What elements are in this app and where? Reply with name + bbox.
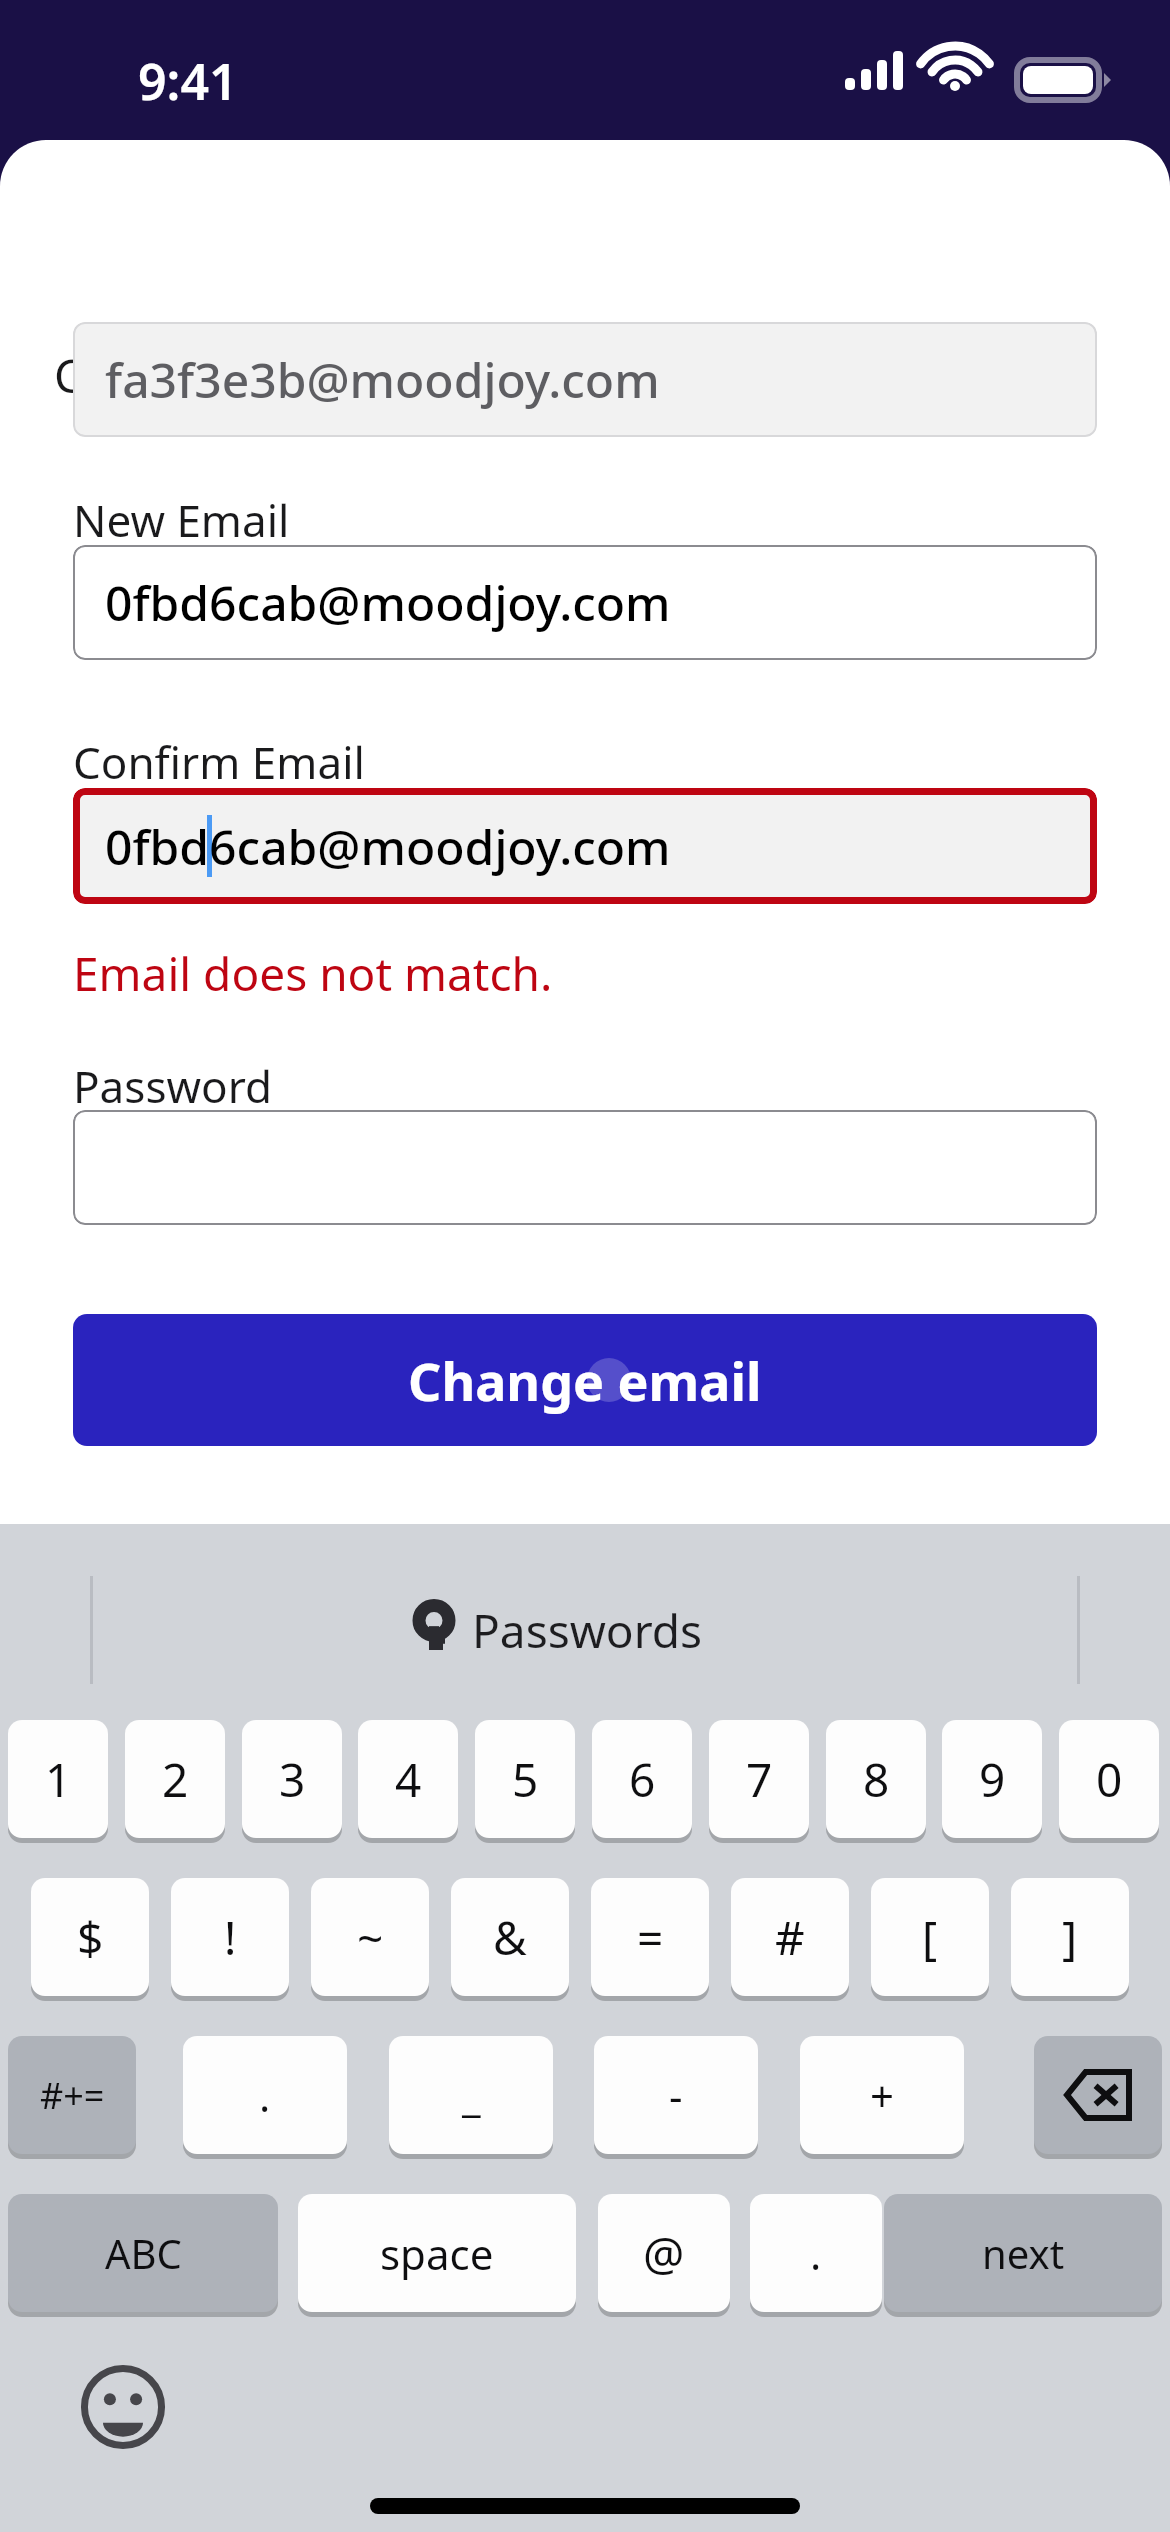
staticText: fa3f3e3b@moodjoy.com <box>105 347 660 412</box>
staticText: ! <box>224 1906 237 1969</box>
button[interactable]: 6 <box>592 1720 692 1838</box>
button[interactable]: . <box>750 2194 882 2312</box>
staticText: Cancel <box>54 344 198 407</box>
staticText: 3 <box>279 1748 306 1811</box>
button[interactable]: $ <box>31 1878 149 1996</box>
button[interactable]: ABC <box>8 2194 278 2312</box>
button[interactable]: space <box>298 2194 576 2312</box>
staticText: Confirm Email <box>73 732 365 792</box>
staticText: 1 <box>45 1748 72 1811</box>
staticText: 9:41 <box>138 47 238 115</box>
button[interactable]: _ <box>389 2036 553 2154</box>
button[interactable]: = <box>591 1878 709 1996</box>
button[interactable]: Backspace <box>1034 2036 1162 2154</box>
staticText: ] <box>1062 1906 1078 1969</box>
button[interactable]: Passwords <box>410 1574 780 1686</box>
button[interactable]: Cancel <box>50 330 202 420</box>
staticText: New Email <box>73 490 290 550</box>
button[interactable]: 9 <box>942 1720 1042 1838</box>
button[interactable]: fa3f3e3b@moodjoy.com <box>73 322 1097 437</box>
staticText: = <box>637 1906 664 1969</box>
staticText: @ <box>643 2222 685 2285</box>
staticText: 0fbd6cab@moodjoy.com <box>105 814 671 879</box>
button[interactable]: ~ <box>311 1878 429 1996</box>
button[interactable]: 4 <box>358 1720 458 1838</box>
staticText: Change email <box>408 1345 762 1416</box>
staticText: . <box>810 2225 822 2282</box>
staticText: Change email address <box>312 348 860 416</box>
button[interactable]: & <box>451 1878 569 1996</box>
button[interactable]: + <box>800 2036 964 2154</box>
staticText: 0 <box>1096 1748 1123 1811</box>
button[interactable]: [ <box>871 1878 989 1996</box>
button[interactable]: # <box>731 1878 849 1996</box>
staticText: space <box>380 2225 494 2282</box>
button[interactable]: Change email <box>73 1314 1097 1446</box>
button[interactable]: next <box>884 2194 1162 2312</box>
staticText: & <box>493 1906 527 1969</box>
staticText: #+= <box>40 2071 105 2120</box>
button[interactable]: ! <box>171 1878 289 1996</box>
button[interactable]: ] <box>1011 1878 1129 1996</box>
button[interactable]: 1 <box>8 1720 108 1838</box>
button[interactable]: 8 <box>826 1720 926 1838</box>
button[interactable]: Emoji <box>78 2362 168 2452</box>
button[interactable]: 5 <box>475 1720 575 1838</box>
staticText: 6 <box>629 1748 656 1811</box>
staticText: 8 <box>863 1748 890 1811</box>
staticText: [ <box>922 1906 938 1969</box>
button[interactable]: 0fbd6cab@moodjoy.com <box>73 788 1097 904</box>
staticText: 9 <box>979 1748 1006 1811</box>
button[interactable]: 0 <box>1059 1720 1159 1838</box>
staticText: 0fbd6cab@moodjoy.com <box>105 570 671 635</box>
staticText: . <box>259 2067 271 2124</box>
staticText: next <box>982 2226 1065 2280</box>
staticText: Password <box>73 1056 273 1116</box>
staticText: Passwords <box>472 1599 703 1662</box>
staticText: ABC <box>105 2226 182 2280</box>
staticText: + <box>870 2067 895 2124</box>
staticText: _ <box>462 2067 481 2124</box>
staticText: 4 <box>395 1748 422 1811</box>
staticText: ~ <box>357 1906 384 1969</box>
staticText: 2 <box>162 1748 189 1811</box>
button[interactable]: #+= <box>8 2036 136 2154</box>
button[interactable]: @ <box>598 2194 730 2312</box>
button[interactable]: . <box>183 2036 347 2154</box>
staticText: - <box>669 2067 683 2124</box>
button[interactable] <box>73 1110 1097 1225</box>
staticText: 7 <box>746 1748 773 1811</box>
staticText: $ <box>77 1906 104 1969</box>
staticText: 5 <box>512 1748 539 1811</box>
button[interactable]: 0fbd6cab@moodjoy.com <box>73 545 1097 660</box>
staticText: # <box>775 1906 805 1969</box>
button[interactable]: 2 <box>125 1720 225 1838</box>
button[interactable]: 7 <box>709 1720 809 1838</box>
staticText: Email does not match. <box>73 942 553 1005</box>
button[interactable]: 3 <box>242 1720 342 1838</box>
button[interactable]: - <box>594 2036 758 2154</box>
